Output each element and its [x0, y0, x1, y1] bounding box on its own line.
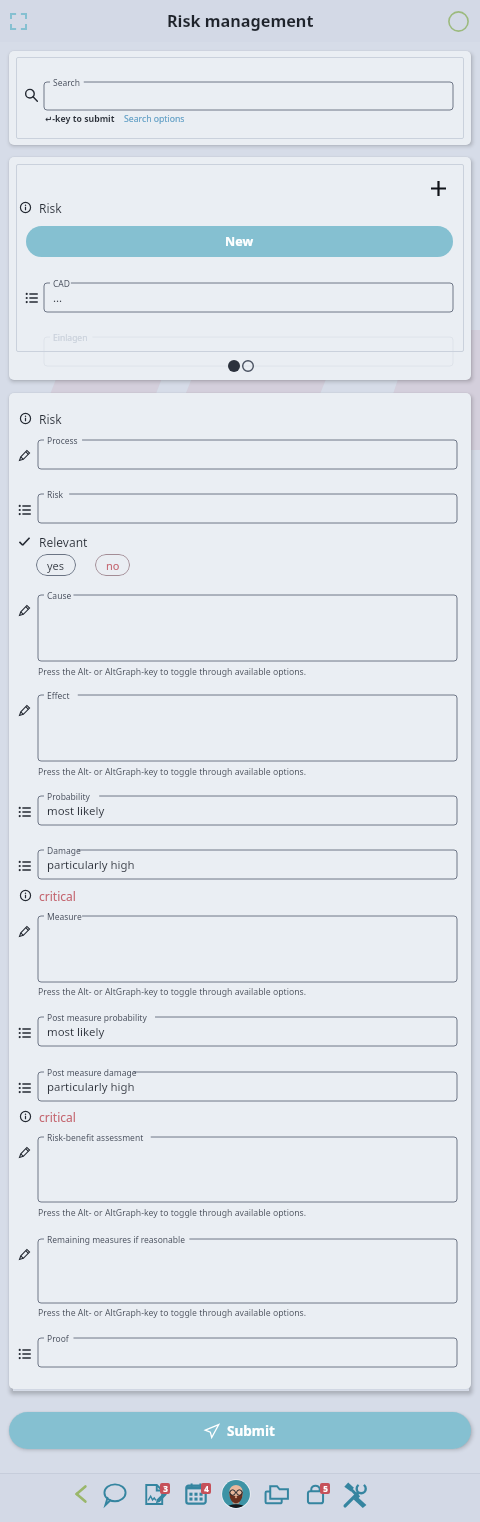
button[interactable]: Calendar — [181, 1479, 211, 1509]
staticText: Risk — [47, 489, 64, 501]
button[interactable]: Folders — [262, 1479, 292, 1509]
staticText: Press the Alt- or AltGraph-key to toggle… — [38, 1207, 306, 1219]
staticText: Post measure probability — [47, 1012, 147, 1024]
staticText: 5 — [323, 1483, 328, 1494]
staticText: Press the Alt- or AltGraph-key to toggle… — [38, 666, 306, 678]
button[interactable]: Fullscreen — [4, 7, 32, 35]
button[interactable]: Tools — [341, 1479, 371, 1509]
staticText: Process — [47, 435, 78, 447]
staticText: Risk management — [167, 10, 314, 32]
button[interactable]: Page 1 — [227, 359, 240, 372]
button[interactable]: Documents — [140, 1479, 170, 1509]
button[interactable]: New — [26, 226, 453, 257]
button[interactable]: Shop — [300, 1479, 330, 1509]
staticText: Einlagen — [53, 332, 88, 344]
staticText: critical — [39, 1109, 76, 1125]
button[interactable]: Chat — [100, 1479, 130, 1509]
staticText: Remaining measures if reasonable — [47, 1234, 186, 1246]
staticText: particularly high — [47, 1079, 135, 1095]
button[interactable]: Page 2 — [241, 359, 254, 372]
staticText: Post measure damage — [47, 1067, 137, 1079]
staticText: most likely — [47, 1024, 105, 1040]
button[interactable]: Add — [425, 175, 451, 201]
staticText: Proof — [47, 1333, 69, 1345]
staticText: Search — [53, 77, 80, 89]
staticText: 3 — [163, 1483, 168, 1494]
staticText: Press the Alt- or AltGraph-key to toggle… — [38, 1307, 306, 1319]
staticText: CAD — [53, 278, 71, 290]
button[interactable]: Back — [66, 1479, 96, 1509]
staticText: critical — [39, 888, 76, 904]
staticText: Damage — [47, 845, 81, 857]
button[interactable]: no — [95, 554, 130, 576]
button[interactable]: Status — [444, 7, 472, 35]
staticText: Submit — [227, 1422, 275, 1440]
staticText: Risk-benefit assessment — [47, 1132, 144, 1144]
staticText: Cause — [47, 590, 72, 602]
staticText: Risk — [39, 411, 62, 427]
staticText: ... — [53, 290, 63, 306]
button[interactable]: Search options — [124, 113, 185, 125]
staticText: Press the Alt- or AltGraph-key to toggle… — [38, 766, 306, 778]
button[interactable]: yes — [36, 554, 76, 576]
staticText: no — [106, 558, 120, 573]
button[interactable]: Submit — [9, 1412, 471, 1449]
staticText: Probability — [47, 791, 90, 803]
staticText: New — [225, 233, 254, 250]
staticText: Measure — [47, 911, 82, 923]
staticText: ↵-key to submit — [45, 113, 115, 125]
staticText: particularly high — [47, 857, 135, 873]
staticText: Risk — [39, 200, 62, 216]
staticText: most likely — [47, 803, 105, 819]
staticText: Relevant — [39, 534, 88, 550]
staticText: 4 — [204, 1483, 209, 1494]
staticText: Effect — [47, 690, 70, 702]
button[interactable]: Profile — [220, 1478, 252, 1510]
staticText: yes — [47, 558, 65, 573]
staticText: Press the Alt- or AltGraph-key to toggle… — [38, 986, 306, 998]
